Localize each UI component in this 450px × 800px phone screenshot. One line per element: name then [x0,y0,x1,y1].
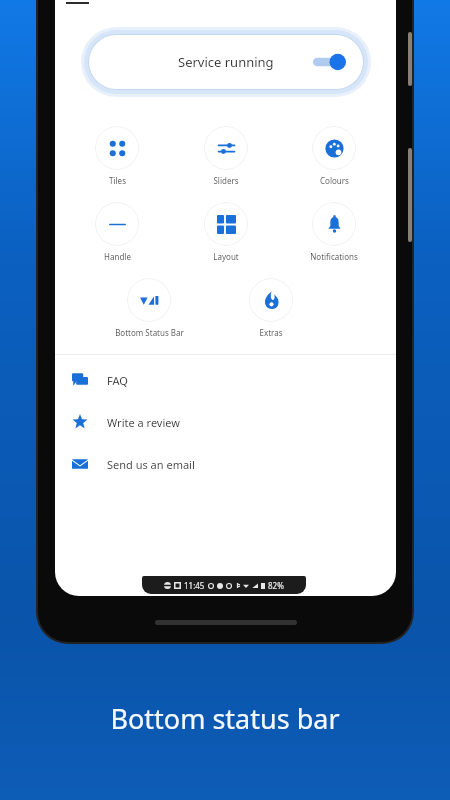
staticText: 82% [268,580,284,591]
button[interactable]: Send us an email [55,443,396,485]
staticText: Tiles [109,175,126,186]
button[interactable]: Write a review [55,401,396,443]
button[interactable]: FAQ [55,359,396,401]
staticText: Layout [213,251,239,262]
button[interactable]: Extras [225,278,317,338]
button[interactable]: Handle [71,202,163,262]
staticText: Colours [320,175,349,186]
staticText: Sliders [213,175,239,186]
button[interactable]: Notifications [288,202,380,262]
staticText: Extras [259,327,283,338]
button[interactable]: Colours [288,126,380,186]
staticText: 11:45 [184,580,205,591]
button[interactable]: Bottom Status Bar [103,278,195,338]
button[interactable]: Service running [89,35,363,89]
staticText: FAQ [107,373,128,388]
button[interactable]: Tiles [71,126,163,186]
staticText: Bottom Status Bar [115,327,184,338]
staticText: Send us an email [107,457,195,472]
button[interactable]: Bottom status bar [142,576,306,594]
staticText: Service running [178,53,274,71]
staticText: Write a review [107,415,180,430]
staticText: Notifications [310,251,358,262]
staticText: Bottom status bar [110,700,340,737]
button[interactable]: Layout [180,202,272,262]
button[interactable]: Sliders [180,126,272,186]
staticText: Handle [104,251,131,262]
